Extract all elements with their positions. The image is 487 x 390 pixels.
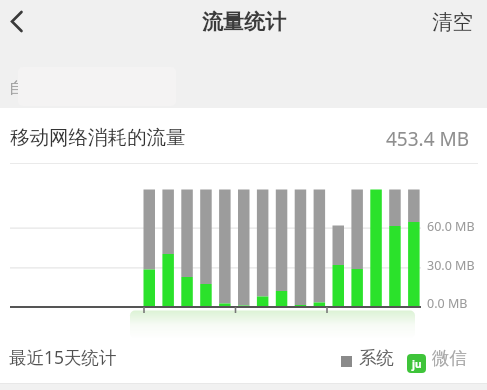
staticText: 60.0 MB [427,218,475,235]
staticText: 微信 [432,347,467,369]
button[interactable] [0,0,44,44]
staticText: 流量统计 [202,9,286,35]
staticText: 453.4 MB [386,126,470,152]
staticText: 系统 [359,347,394,369]
staticText: 自 [9,78,25,98]
button[interactable]: 清空 [417,0,487,44]
staticText: 清空 [432,9,473,35]
staticText: ju [412,357,422,371]
staticText: 30.0 MB [427,257,475,274]
staticText: 最近15天统计 [9,345,117,369]
staticText: 移动网络消耗的流量 [10,125,186,150]
staticText: 0.0 MB [427,295,468,312]
button[interactable]: 移动网络消耗的流量 [0,112,487,164]
